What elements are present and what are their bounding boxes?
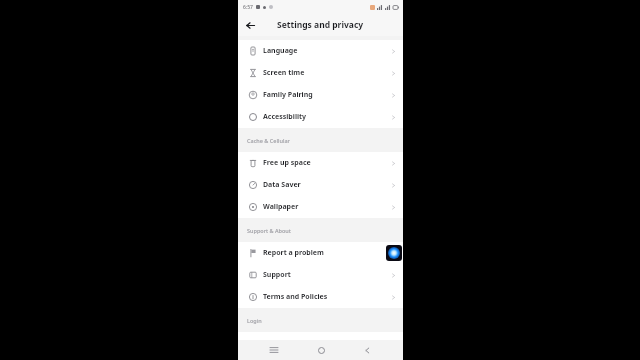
button[interactable]: Screen time (238, 62, 403, 84)
staticText: Data Saver (263, 180, 301, 190)
staticText: Cache & Cellular (247, 137, 290, 144)
staticText: Language (263, 46, 298, 56)
staticText: Login (247, 317, 262, 324)
button[interactable]: Language (238, 40, 403, 62)
button[interactable]: Family Pairing (238, 84, 403, 106)
staticText: Terms and Policies (263, 292, 328, 302)
staticText: Settings and privacy (277, 19, 364, 31)
button[interactable]: Free up space (238, 152, 403, 174)
staticText: Wallpaper (263, 202, 299, 212)
staticText: Family Pairing (263, 90, 313, 100)
staticText: Report a problem (263, 248, 324, 258)
button[interactable]: Wallpaper (238, 196, 403, 218)
staticText: Support & About (247, 227, 291, 234)
button[interactable]: Recents (264, 340, 284, 360)
button[interactable]: Accessibility (238, 106, 403, 128)
button[interactable]: Report a problem (238, 242, 403, 264)
button[interactable]: Home (311, 340, 331, 360)
button[interactable]: Data Saver (238, 174, 403, 196)
staticText: Free up space (263, 158, 311, 168)
button[interactable]: Support (238, 264, 403, 286)
button[interactable]: Terms and Policies (238, 286, 403, 308)
staticText: Accessibility (263, 112, 307, 122)
staticText: Screen time (263, 68, 305, 78)
button[interactable]: Back (242, 17, 258, 33)
staticText: 6:57 (243, 4, 253, 11)
button[interactable]: Back (357, 340, 377, 360)
staticText: Support (263, 270, 291, 280)
